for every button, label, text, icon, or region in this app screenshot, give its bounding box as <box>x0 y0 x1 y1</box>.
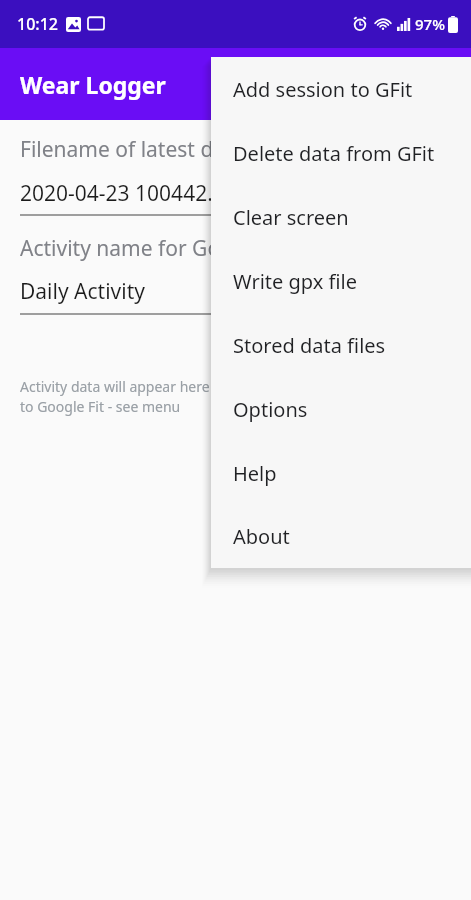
button[interactable]: Options <box>211 377 471 441</box>
staticText: About <box>233 523 290 550</box>
button[interactable]: Write gpx file <box>211 249 471 313</box>
staticText: Help <box>233 460 277 487</box>
staticText: Clear screen <box>233 204 349 231</box>
staticText: Write gpx file <box>233 268 357 295</box>
staticText: Filename of latest data file <box>20 135 280 164</box>
button[interactable]: Delete data from GFit <box>211 121 471 185</box>
button[interactable]: About <box>211 505 471 568</box>
staticText: 2020-04-23 100442.csv <box>20 179 244 208</box>
staticText: 10:12 <box>17 13 58 35</box>
staticText: Add session to GFit <box>233 76 413 103</box>
staticText: Wear Logger <box>20 69 166 100</box>
staticText: 97% <box>415 14 445 34</box>
staticText: Stored data files <box>233 332 386 359</box>
button[interactable]: Help <box>211 441 471 505</box>
button[interactable]: Stored data files <box>211 313 471 377</box>
staticText: Activity data will appear here when adde… <box>20 377 295 416</box>
staticText: Daily Activity <box>20 277 145 306</box>
staticText: Delete data from GFit <box>233 140 435 167</box>
button[interactable]: Clear screen <box>211 185 471 249</box>
staticText: Activity name for Google Fit <box>20 234 293 263</box>
button[interactable]: Add session to GFit <box>211 57 471 121</box>
staticText: Options <box>233 396 308 423</box>
